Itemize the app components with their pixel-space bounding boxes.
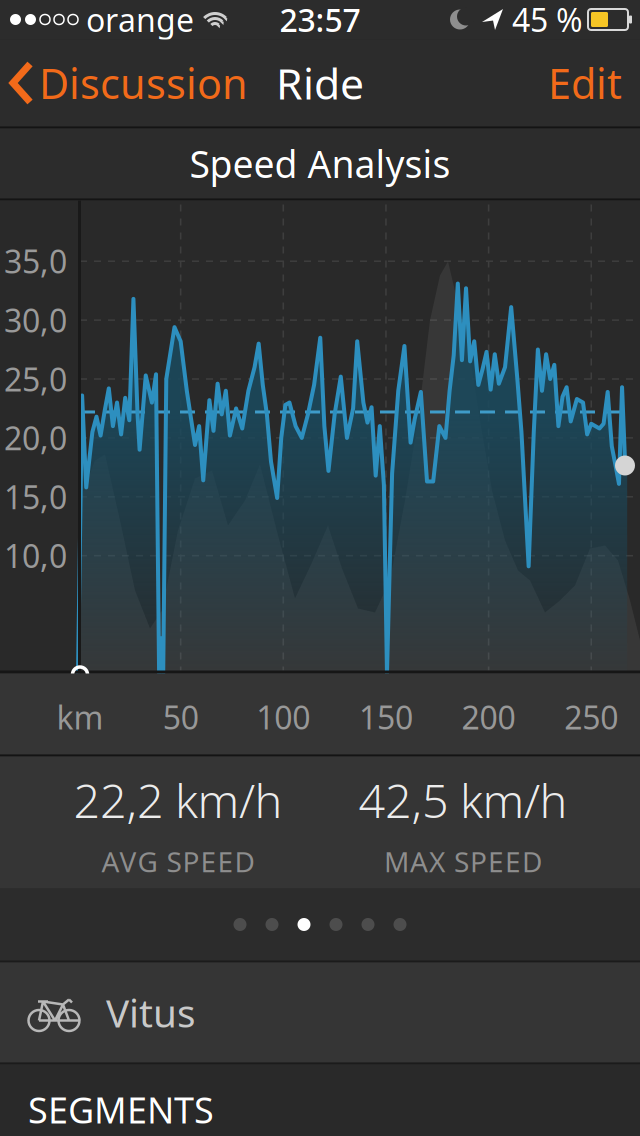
staticText: 200 [462,696,516,738]
staticText: 35,0 [4,240,67,282]
button[interactable]: Edit [548,56,640,110]
staticText: Ride [276,55,364,111]
staticText: 20,0 [4,417,67,459]
staticText: 45 % [512,0,583,41]
staticText: AVG SPEED [101,843,254,880]
staticText: orange [86,0,194,41]
button[interactable]: Discussion [0,56,248,110]
button[interactable] [0,888,640,960]
staticText: 10,0 [4,534,67,577]
staticText: 50 [163,696,199,738]
staticText: Discussion [39,56,248,110]
staticText: Vitus [106,987,196,1038]
staticText: 30,0 [4,299,67,341]
staticText: km [56,696,103,738]
staticText: 25,0 [4,358,67,400]
staticText: Edit [548,56,622,110]
staticText: 22,2 km/h [73,769,282,831]
staticText: SEGMENTS [28,1086,214,1133]
button[interactable]: Vitus [0,962,640,1062]
staticText: 150 [359,696,413,738]
staticText: 15,0 [4,476,67,518]
staticText: 23:57 [279,0,360,41]
staticText: 250 [564,696,618,738]
staticText: MAX SPEED [384,843,542,880]
staticText: Speed Analysis [189,139,450,188]
staticText: 100 [256,696,310,738]
staticText: 42,5 km/h [358,769,567,831]
